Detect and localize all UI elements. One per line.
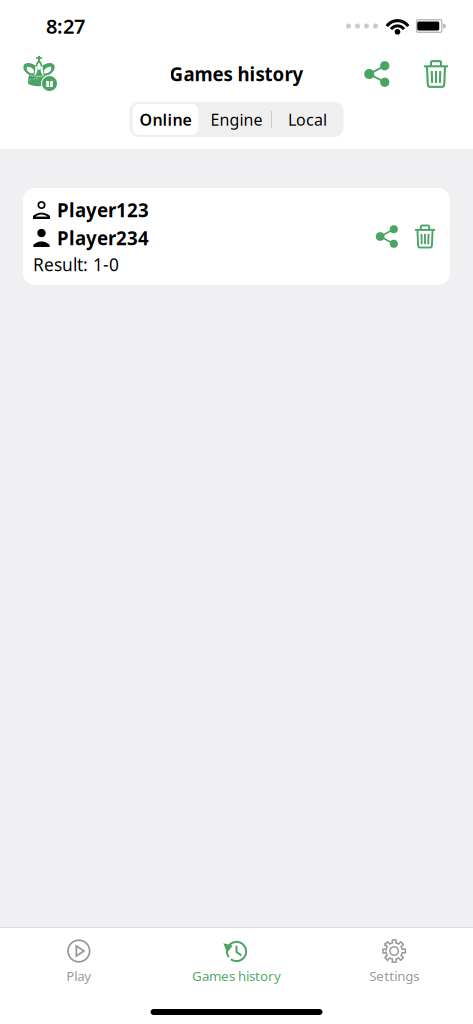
staticText: Settings bbox=[369, 967, 419, 985]
staticText: Online bbox=[139, 109, 191, 130]
staticText: Games history bbox=[192, 967, 281, 985]
button[interactable]: Online bbox=[130, 102, 201, 137]
staticText: 8:27 bbox=[46, 13, 85, 39]
button[interactable]: Games history bbox=[158, 928, 315, 991]
button[interactable]: Local bbox=[272, 102, 343, 137]
staticText: Games history bbox=[169, 62, 303, 86]
button[interactable]: Delete game bbox=[406, 214, 444, 258]
button[interactable]: Engine bbox=[201, 102, 272, 137]
button[interactable]: Share game bbox=[368, 214, 406, 258]
staticText: Local bbox=[288, 109, 327, 130]
button[interactable]: Chess app home bbox=[0, 55, 59, 93]
staticText: Player123 bbox=[57, 198, 149, 222]
button[interactable]: Player123 bbox=[23, 188, 450, 285]
staticText: Player234 bbox=[57, 226, 149, 250]
button[interactable]: Delete all bbox=[414, 52, 458, 96]
staticText: Engine bbox=[210, 109, 262, 130]
staticText: Play bbox=[66, 967, 91, 985]
button[interactable]: Play bbox=[0, 928, 158, 991]
button[interactable]: Settings bbox=[315, 928, 473, 991]
staticText: Result: 1-0 bbox=[33, 253, 119, 276]
button[interactable]: Share bbox=[355, 52, 403, 96]
